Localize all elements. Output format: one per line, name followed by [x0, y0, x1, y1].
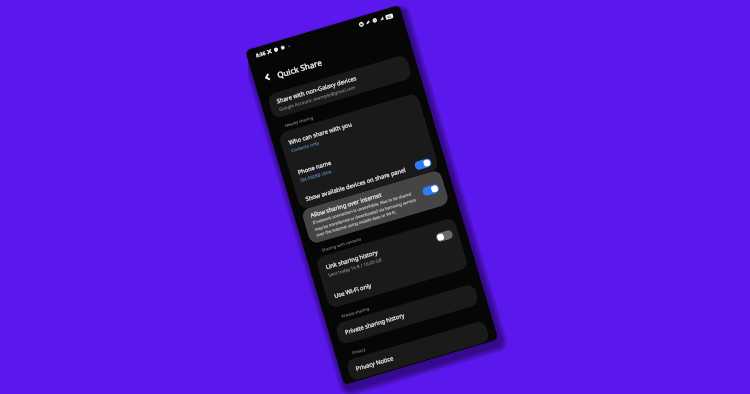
staticText: Nearby sharing	[284, 115, 314, 128]
button[interactable]: Private sharing history	[334, 283, 480, 345]
staticText: SM-S928B Ultra	[299, 168, 333, 183]
staticText: 82	[387, 15, 392, 20]
staticText: Privacy Notice	[355, 354, 395, 373]
button[interactable]: Switch on	[421, 183, 440, 197]
staticText: Sent today 16 B / 10.00 GB	[327, 256, 383, 278]
button[interactable]: Phone name	[287, 122, 435, 193]
button[interactable]: Switch off	[435, 229, 454, 243]
staticText: Who can share with you	[288, 120, 353, 147]
staticText: Contacts only	[290, 139, 320, 153]
staticText: 8:36	[255, 50, 267, 59]
button[interactable]: Link sharing history	[315, 217, 463, 288]
staticText: Use Wi-Fi only	[333, 281, 373, 300]
staticText: Share with non-Galaxy devices	[276, 74, 358, 105]
staticText: Sharing with contacts	[321, 236, 362, 253]
staticText: Privacy	[352, 347, 366, 355]
staticText: Google Account: example@gmail.com	[278, 84, 357, 112]
staticText: Show available devices on share panel	[305, 163, 416, 203]
staticText: Private sharing	[341, 306, 370, 319]
staticText: Phone name	[297, 159, 332, 176]
button[interactable]: Show available devices on share panel	[296, 152, 440, 210]
button[interactable]: Allow sharing over internet	[301, 169, 450, 245]
staticText: If network connection is unavailable, fi…	[312, 189, 423, 238]
button[interactable]: Switch on	[414, 157, 433, 171]
staticText: Allow sharing over internet	[309, 191, 383, 219]
staticText: Link sharing history	[325, 248, 379, 271]
staticText: Quick Share	[276, 56, 324, 80]
button[interactable]: Back	[259, 68, 276, 86]
button[interactable]: Who can share with you	[278, 92, 426, 163]
button[interactable]: Share with non-Galaxy devices	[267, 54, 413, 119]
button[interactable]: Use Wi-Fi only	[324, 247, 469, 309]
staticText: Private sharing history	[344, 311, 406, 336]
button[interactable]: Privacy Notice	[345, 320, 491, 382]
